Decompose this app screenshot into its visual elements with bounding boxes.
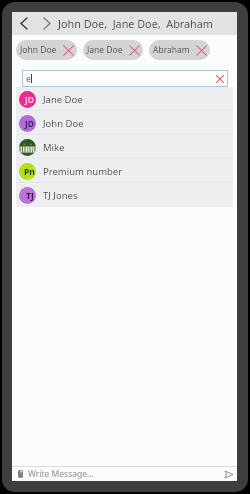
- button[interactable]: Send: [222, 467, 236, 481]
- staticText: John Doe, Jane Doe, Abraham: [58, 16, 213, 31]
- staticText: Pn: [24, 166, 35, 178]
- staticText: John Doe: [20, 44, 57, 56]
- button[interactable]: JD: [16, 111, 233, 135]
- button[interactable]: e: [22, 70, 228, 87]
- staticText: TJ Jones: [43, 189, 78, 202]
- staticText: Abraham: [153, 44, 190, 56]
- staticText: Write Message...: [28, 468, 94, 480]
- staticText: Premium number: [43, 165, 123, 178]
- staticText: JD: [25, 118, 35, 130]
- staticText: TJ: [26, 190, 34, 202]
- button[interactable]: John Doe: [16, 40, 77, 60]
- button[interactable]: Mike: [16, 135, 233, 159]
- button[interactable]: Abraham: [149, 40, 210, 60]
- button[interactable]: Forward: [35, 12, 58, 35]
- staticText: JD: [25, 94, 35, 106]
- button[interactable]: TJ: [16, 183, 233, 207]
- staticText: e: [26, 73, 31, 85]
- button[interactable]: JD: [16, 87, 233, 111]
- staticText: Jane Doe: [43, 93, 83, 106]
- staticText: John Doe: [43, 117, 84, 130]
- staticText: Mike: [43, 141, 65, 154]
- button[interactable]: Attach file: [14, 468, 26, 480]
- button[interactable]: Pn: [16, 159, 233, 183]
- staticText: Jane Doe: [87, 44, 123, 56]
- button[interactable]: Back: [12, 12, 35, 35]
- button[interactable]: Jane Doe: [83, 40, 143, 60]
